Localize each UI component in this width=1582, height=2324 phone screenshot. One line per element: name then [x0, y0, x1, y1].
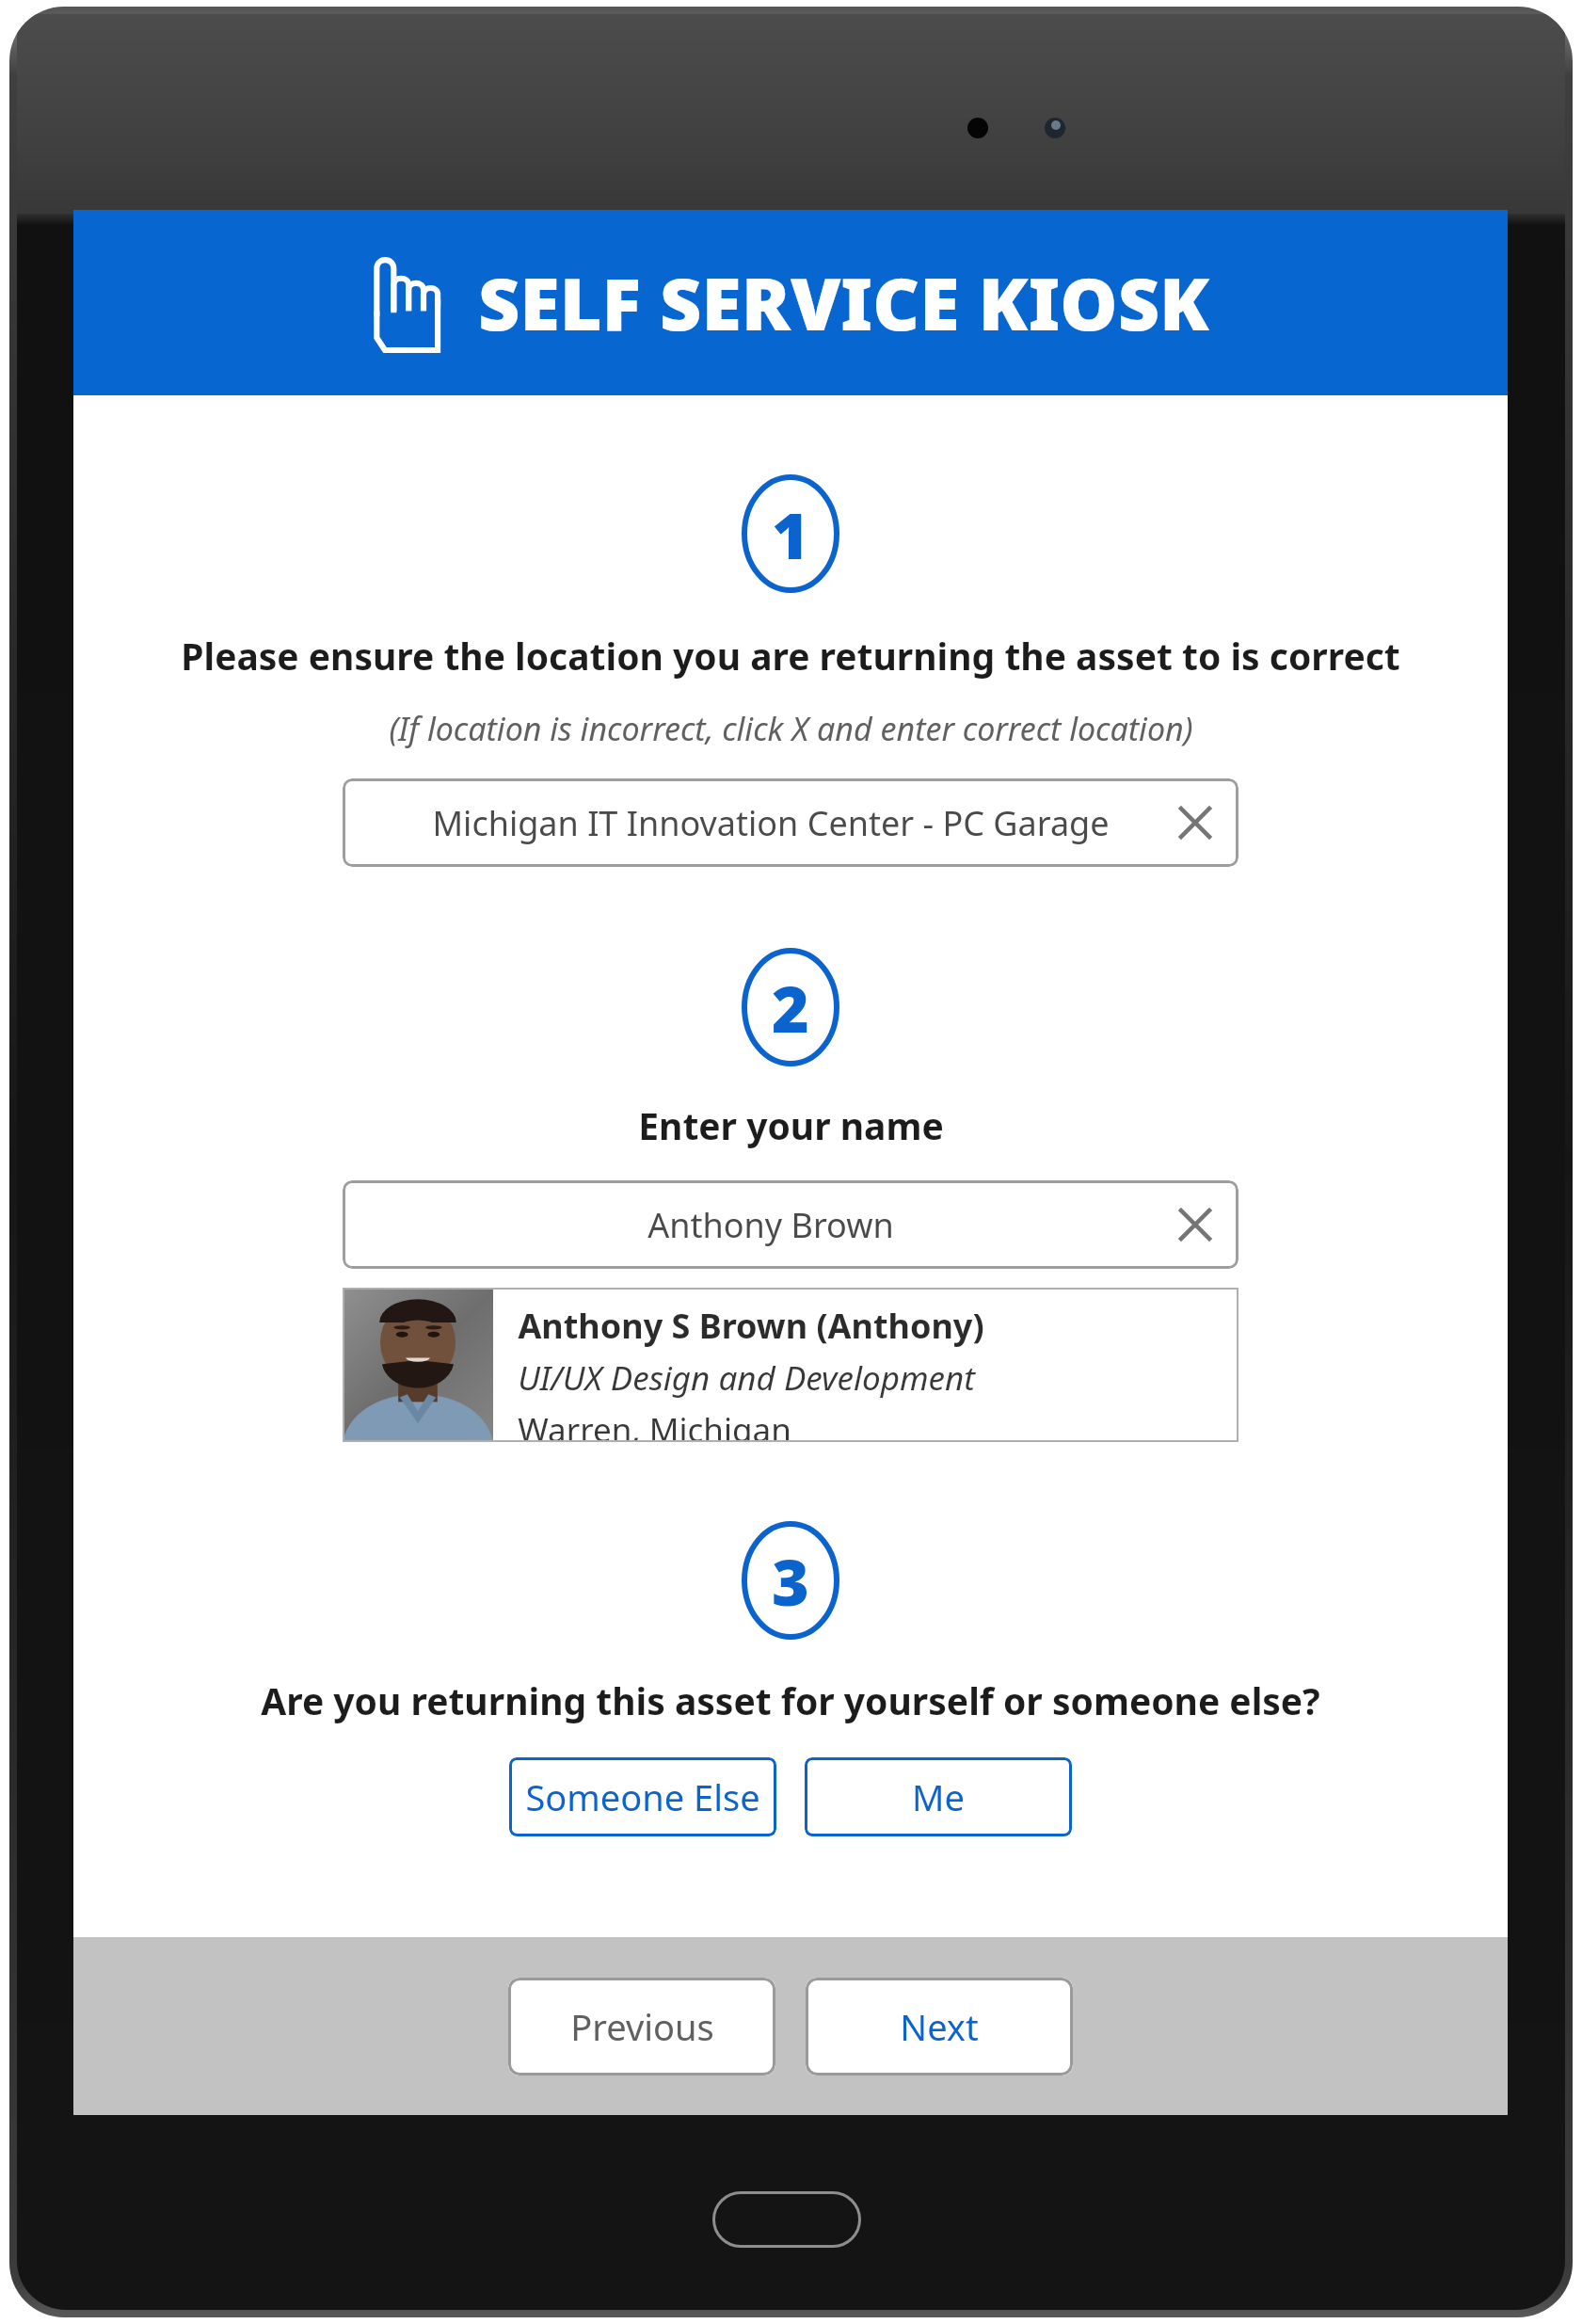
- staticText: Next: [900, 2002, 979, 2051]
- staticText: Michigan IT Innovation Center - PC Garag…: [367, 800, 1175, 846]
- button[interactable]: Clear: [1175, 802, 1216, 843]
- button[interactable]: Clear: [1175, 1204, 1216, 1245]
- button[interactable]: Me: [805, 1757, 1072, 1836]
- staticText: Anthony Brown: [367, 1202, 1175, 1248]
- button[interactable]: Anthony Brown: [343, 1180, 1238, 1269]
- staticText: Anthony S Brown (Anthony): [518, 1303, 984, 1349]
- button[interactable]: Previous: [508, 1978, 775, 2076]
- staticText: Are you returning this asset for yoursel…: [261, 1675, 1320, 1725]
- button[interactable]: Home: [712, 2191, 861, 2248]
- staticText: Enter your name: [638, 1100, 944, 1150]
- other: Self service kiosk: [373, 255, 440, 351]
- staticText: 2: [772, 964, 809, 1051]
- staticText: Please ensure the location you are retur…: [181, 631, 1400, 681]
- staticText: 3: [772, 1537, 809, 1625]
- staticText: Me: [912, 1772, 965, 1821]
- staticText: SELF SERVICE KIOSK: [478, 253, 1209, 352]
- button[interactable]: Next: [806, 1978, 1073, 2076]
- staticText: UI/UX Design and Development: [518, 1355, 975, 1401]
- staticText: 1: [772, 490, 809, 578]
- staticText: Previous: [570, 2002, 714, 2051]
- staticText: (If location is incorrect, click X and e…: [389, 707, 1193, 750]
- button[interactable]: Michigan IT Innovation Center - PC Garag…: [343, 778, 1238, 867]
- staticText: Warren, Michigan: [518, 1407, 791, 1442]
- button[interactable]: Someone Else: [509, 1757, 776, 1836]
- staticText: Someone Else: [525, 1772, 760, 1821]
- button[interactable]: Anthony S Brown (Anthony): [343, 1288, 1238, 1442]
